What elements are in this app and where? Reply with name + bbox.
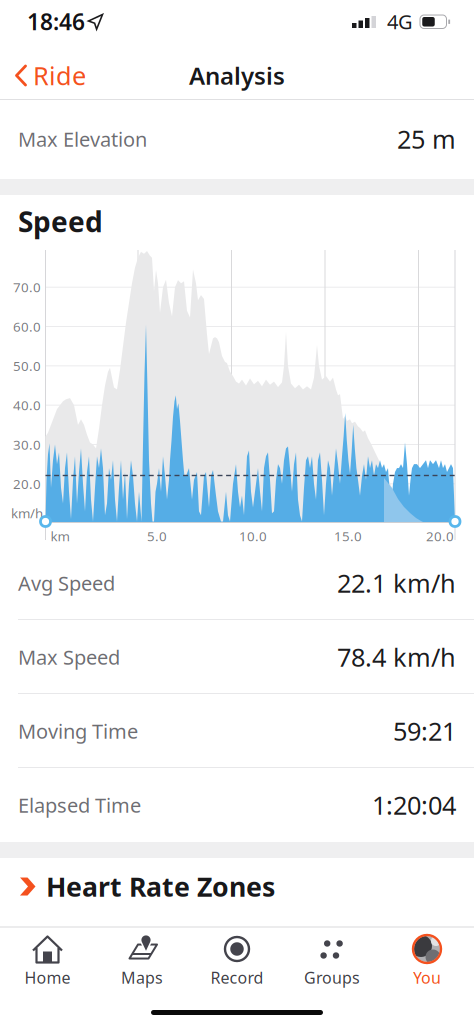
staticText: 40.0 xyxy=(13,396,41,414)
staticText: 10.0 xyxy=(239,527,267,545)
staticText: 78.4 km/h xyxy=(337,640,456,674)
staticText: 50.0 xyxy=(13,357,41,375)
staticText: 70.0 xyxy=(13,278,41,296)
staticText: 22.1 km/h xyxy=(337,566,456,600)
staticText: 20.0 xyxy=(13,475,41,493)
staticText: Speed xyxy=(18,203,103,240)
staticText: Home xyxy=(24,967,70,988)
staticText: 18:46 xyxy=(27,6,85,36)
staticText: 1:20:04 xyxy=(372,788,456,822)
staticText: km/h xyxy=(11,504,43,522)
staticText: Record xyxy=(210,967,263,988)
staticText: Maps xyxy=(121,967,163,988)
staticText: 59:21 xyxy=(393,714,456,748)
staticText: Heart Rate Zones xyxy=(46,869,275,904)
staticText: 20.0 xyxy=(426,527,454,545)
staticText: 30.0 xyxy=(13,436,41,453)
staticText: 25 m xyxy=(397,122,456,156)
staticText: Moving Time xyxy=(18,718,138,744)
staticText: Max Elevation xyxy=(18,126,147,152)
staticText: Groups xyxy=(304,967,360,988)
staticText: Elapsed Time xyxy=(18,792,141,818)
staticText: km xyxy=(50,527,69,545)
staticText: Analysis xyxy=(189,60,285,91)
staticText: Ride xyxy=(33,59,86,92)
staticText: 15.0 xyxy=(334,527,362,545)
staticText: 60.0 xyxy=(13,318,41,335)
staticText: Avg Speed xyxy=(18,570,115,596)
staticText: You xyxy=(413,967,441,988)
staticText: Max Speed xyxy=(18,644,120,670)
staticText: 4G xyxy=(387,8,413,35)
staticText: 5.0 xyxy=(147,527,167,545)
